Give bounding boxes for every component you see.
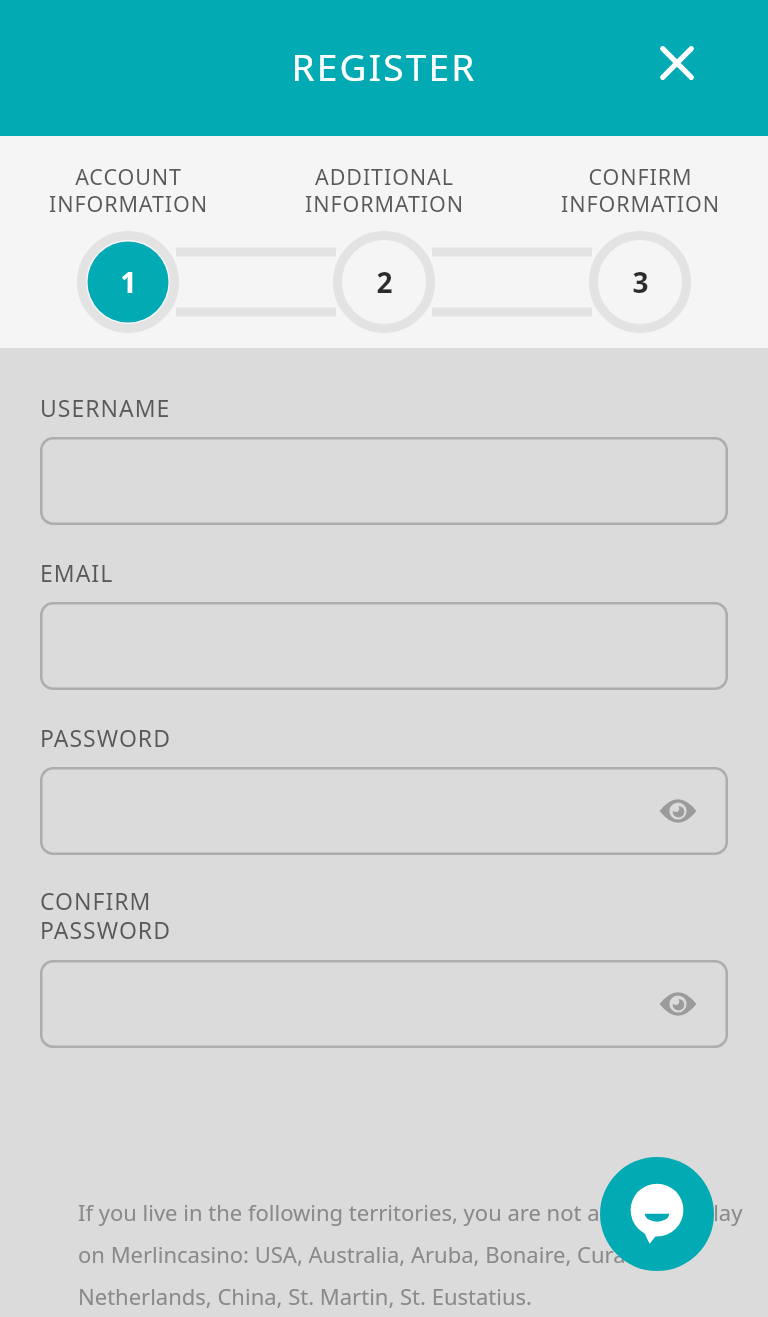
staticText: REGISTER: [291, 41, 477, 91]
staticText: CONFIRM INFORMATION: [561, 162, 720, 218]
staticText: CONFIRM PASSWORD: [40, 885, 171, 946]
staticText: PASSWORD: [40, 722, 171, 753]
staticText: 2: [376, 263, 393, 301]
button[interactable]: Show password: [40, 767, 728, 855]
button[interactable]: [40, 602, 728, 690]
staticText: 1: [120, 263, 137, 301]
button[interactable]: Show password: [650, 976, 706, 1032]
button[interactable]: 1: [77, 231, 179, 333]
button[interactable]: Chat support: [600, 1157, 714, 1271]
staticText: If you live in the following territories…: [78, 1197, 760, 1311]
button[interactable]: Close: [643, 29, 711, 97]
staticText: 3: [632, 263, 649, 301]
button[interactable]: Show password: [650, 783, 706, 839]
staticText: USERNAME: [40, 392, 171, 423]
staticText: EMAIL: [40, 557, 114, 588]
staticText: ACCOUNT INFORMATION: [49, 162, 208, 218]
button[interactable]: Show password: [40, 960, 728, 1048]
button[interactable]: 3: [589, 231, 691, 333]
button[interactable]: [40, 437, 728, 525]
button[interactable]: 2: [333, 231, 435, 333]
staticText: ADDITIONAL INFORMATION: [305, 162, 464, 218]
